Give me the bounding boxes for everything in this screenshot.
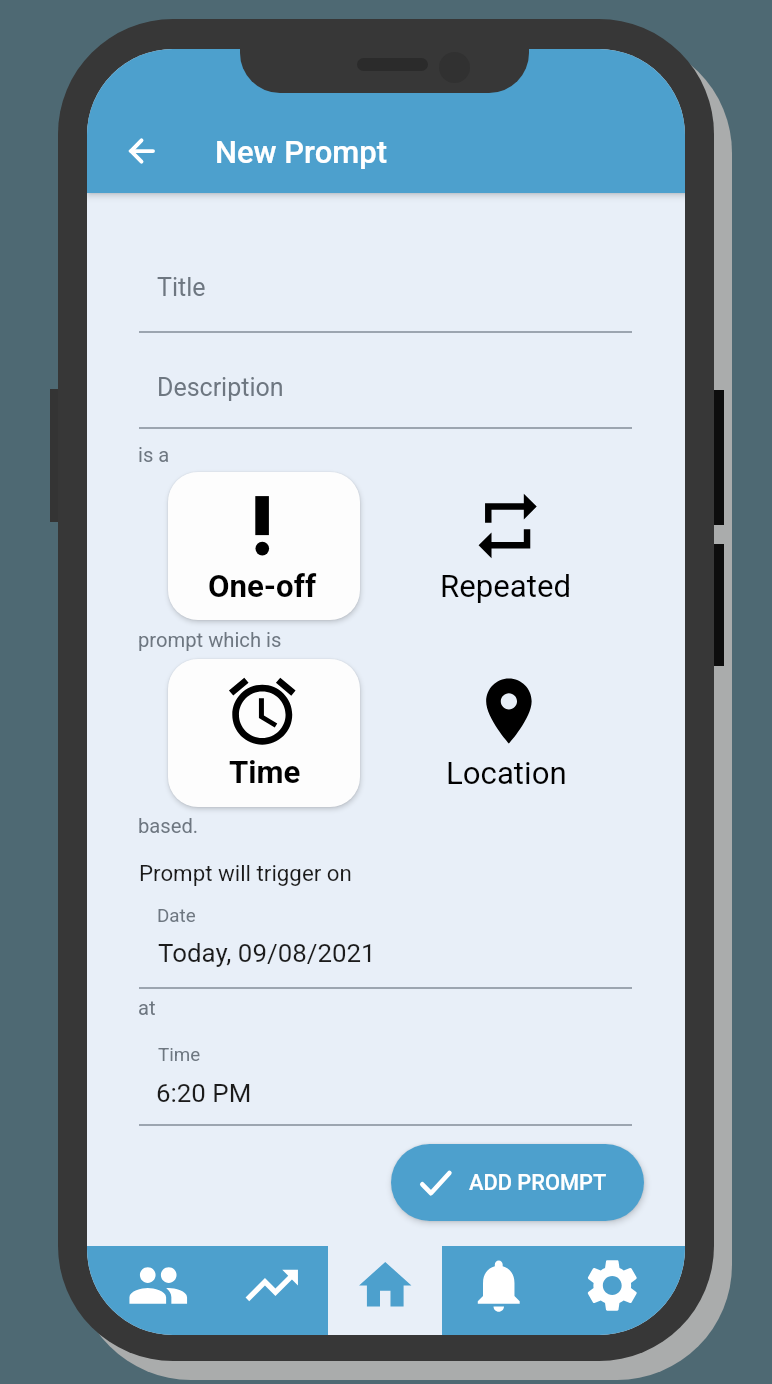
button[interactable] <box>139 249 632 337</box>
staticText: 6:20 PM <box>156 1078 252 1108</box>
button[interactable]: Add prompt <box>391 1144 644 1221</box>
button[interactable]: Back <box>117 127 165 175</box>
button[interactable] <box>139 897 632 993</box>
button[interactable]: Location <box>417 659 609 807</box>
staticText: Title <box>157 273 206 302</box>
button[interactable]: Trends <box>215 1246 329 1335</box>
staticText: prompt which is <box>138 628 282 652</box>
staticText: Time <box>229 754 301 791</box>
staticText: Today, 09/08/2021 <box>158 938 376 968</box>
button[interactable]: Home <box>328 1246 442 1335</box>
staticText: Time <box>158 1044 201 1066</box>
staticText: ADD PROMPT <box>469 1170 607 1196</box>
staticText: Repeated <box>440 568 572 605</box>
button[interactable]: Notifications <box>442 1246 556 1335</box>
staticText: at <box>138 996 156 1020</box>
staticText: Location <box>446 755 567 792</box>
staticText: is a <box>138 443 170 467</box>
staticText: Prompt will trigger on <box>139 860 352 886</box>
button[interactable]: Settings <box>555 1246 669 1335</box>
button[interactable]: Repeated <box>417 472 609 620</box>
button[interactable]: Friends <box>101 1246 215 1335</box>
button[interactable]: One-off <box>168 472 360 620</box>
staticText: One-off <box>208 568 317 605</box>
staticText: Date <box>157 905 196 927</box>
staticText: Description <box>157 373 284 402</box>
staticText: based. <box>138 814 199 838</box>
button[interactable] <box>139 1034 632 1130</box>
button[interactable]: Time based <box>168 659 360 807</box>
button[interactable] <box>139 345 632 433</box>
staticText: New Prompt <box>215 134 388 170</box>
